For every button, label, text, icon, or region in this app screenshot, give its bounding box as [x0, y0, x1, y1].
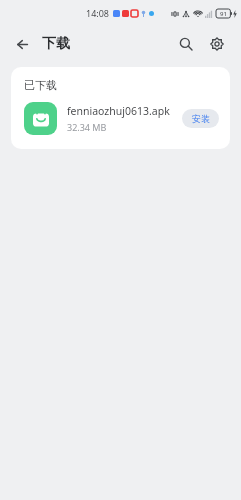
staticText: 91 — [220, 10, 227, 18]
button[interactable]: fenniaozhuj0613.apk — [24, 102, 219, 135]
staticText: 14:08 — [86, 7, 110, 19]
staticText: fenniaozhuj0613.apk — [67, 104, 170, 118]
staticText: 下载 — [42, 35, 70, 53]
button[interactable]: Search — [173, 31, 199, 57]
button[interactable]: Back — [9, 31, 35, 57]
staticText: 32.34 MB — [67, 121, 107, 133]
staticText: 已下载 — [24, 78, 57, 92]
staticText: 安装 — [192, 113, 210, 124]
button[interactable]: 安装 — [182, 109, 219, 128]
button[interactable]: Settings — [204, 31, 230, 57]
